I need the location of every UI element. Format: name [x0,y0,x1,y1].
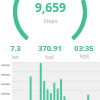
staticText: 370.91 [38,43,62,53]
staticText: kcal [45,54,54,59]
staticText: 03:35 [74,43,94,53]
button[interactable]: Activity bar chart [0,60,100,100]
button[interactable]: 7.3 [0,43,31,59]
staticText: 7.3 [10,43,21,53]
staticText: km [12,54,19,59]
button[interactable]: 370.91 [31,43,68,59]
button[interactable]: Steps progress ring [0,0,100,62]
staticText: 时间 [80,54,89,59]
staticText: 9,659 [35,0,66,15]
staticText: Steps [43,17,58,24]
button[interactable]: 03:35 [68,43,100,59]
